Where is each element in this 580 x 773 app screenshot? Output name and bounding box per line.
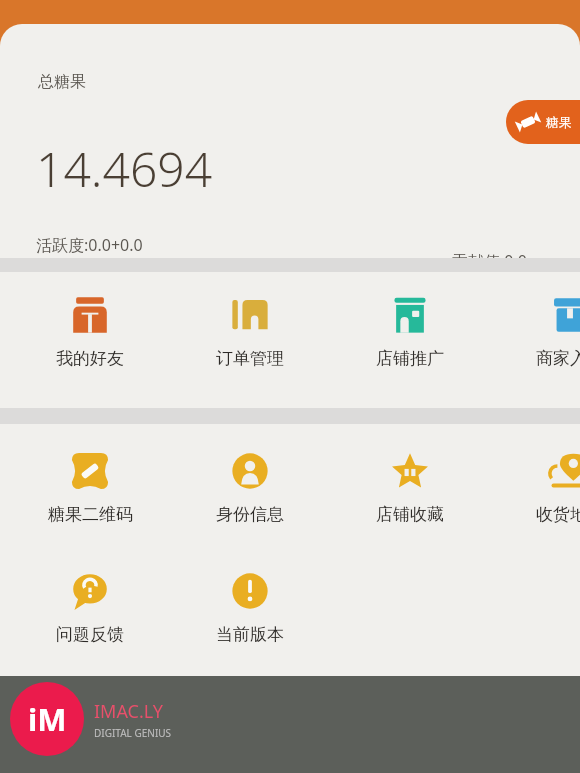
button[interactable]: 订单管理	[184, 290, 316, 373]
staticText: 当前版本	[216, 624, 284, 645]
button[interactable]: 糖果兑换	[506, 100, 580, 144]
staticText: 问题反馈	[56, 624, 124, 645]
staticText: 订单管理	[216, 348, 284, 369]
staticText: 身份信息	[216, 504, 284, 525]
staticText: 商家入驻	[536, 348, 580, 369]
staticText: 贡献值:0.0	[452, 250, 527, 258]
staticText: IMAC.LY	[94, 699, 163, 724]
staticText: 店铺收藏	[376, 504, 444, 525]
button[interactable]: 店铺推广	[344, 290, 476, 373]
staticText: iM	[28, 698, 67, 740]
button[interactable]: 当前版本	[184, 566, 316, 649]
button[interactable]: 商家入驻	[504, 290, 580, 373]
staticText: 14.4694	[36, 136, 213, 201]
button[interactable]: 收货地址	[504, 446, 580, 529]
staticText: 收货地址	[536, 504, 580, 525]
staticText: 糖果	[546, 114, 572, 130]
staticText: 总糖果	[38, 72, 86, 92]
staticText: 店铺推广	[376, 348, 444, 369]
staticText: 我的好友	[56, 348, 124, 369]
button[interactable]: 问题反馈	[24, 566, 156, 649]
button[interactable]: 我的好友	[24, 290, 156, 373]
staticText: DIGITAL GENIUS	[94, 726, 172, 740]
staticText: 活跃度:0.0+0.0	[36, 234, 143, 256]
button[interactable]: 身份信息	[184, 446, 316, 529]
staticText: 糖果二维码	[48, 504, 133, 525]
button[interactable]: 糖果二维码	[24, 446, 156, 529]
button[interactable]: 店铺收藏	[344, 446, 476, 529]
